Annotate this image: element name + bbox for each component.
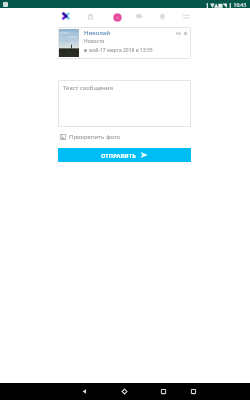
button[interactable]: Николай [58, 27, 191, 59]
button[interactable]: Текст сообщения [58, 80, 191, 127]
staticText: ОТПРАВИТЬ [101, 152, 136, 159]
button[interactable]: Screenshot [187, 383, 199, 400]
button[interactable]: Прикрепить фото [59, 131, 122, 143]
staticText: wall-17 марта 2018 в 13:55 [89, 47, 153, 54]
button[interactable]: Back [78, 383, 90, 400]
button[interactable]: Home [84, 10, 96, 22]
button[interactable]: VK logo [60, 10, 71, 21]
button[interactable]: Menu [180, 10, 192, 22]
staticText: ❙ ▼▲■◥ ❙ 10:45 [205, 2, 247, 9]
button[interactable]: Notifications [156, 10, 168, 22]
button[interactable]: Home [118, 383, 130, 400]
button[interactable]: Recents [157, 383, 169, 400]
staticText: Текст сообщения [63, 84, 113, 92]
button[interactable]: Profile [111, 11, 123, 23]
staticText: Прикрепить фото [69, 133, 121, 141]
staticText: Николай [84, 29, 110, 37]
button[interactable]: ОТПРАВИТЬ [58, 148, 191, 162]
staticText: Новости [84, 38, 105, 45]
button[interactable]: Messages [133, 10, 145, 22]
